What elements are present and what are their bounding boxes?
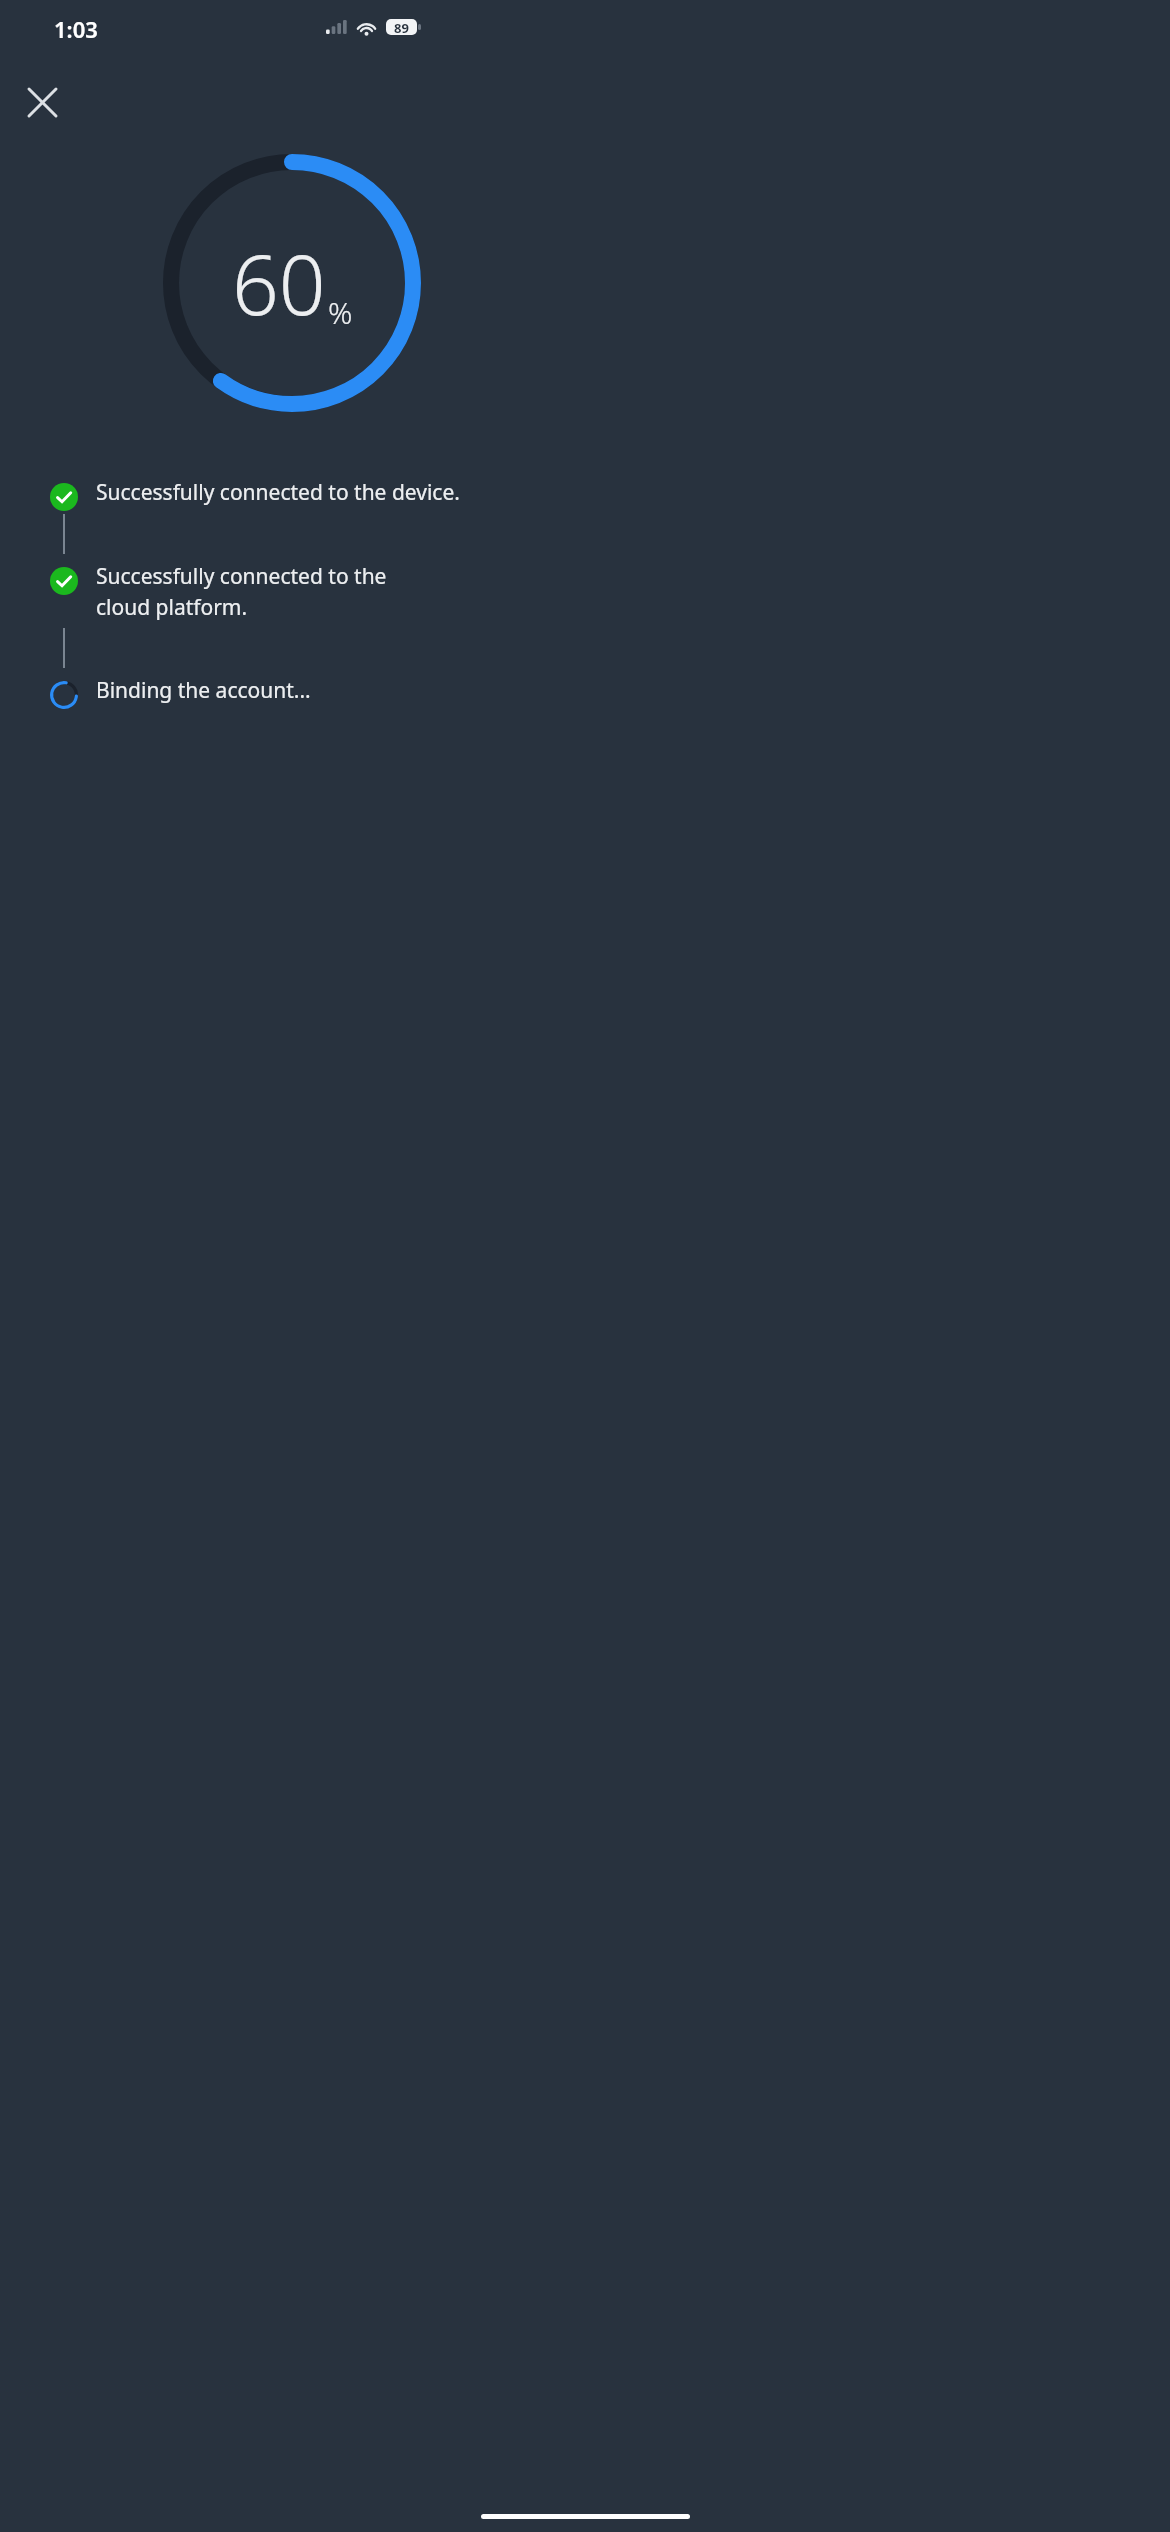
button[interactable]: Close: [14, 74, 70, 130]
staticText: 1:03: [54, 14, 98, 44]
staticText: 89: [394, 19, 409, 35]
staticText: Successfully connected to the device.: [96, 478, 460, 507]
staticText: 60: [232, 227, 326, 339]
staticText: Successfully connected to the cloud plat…: [96, 562, 387, 621]
staticText: %: [328, 292, 353, 333]
staticText: Binding the account...: [96, 676, 311, 705]
